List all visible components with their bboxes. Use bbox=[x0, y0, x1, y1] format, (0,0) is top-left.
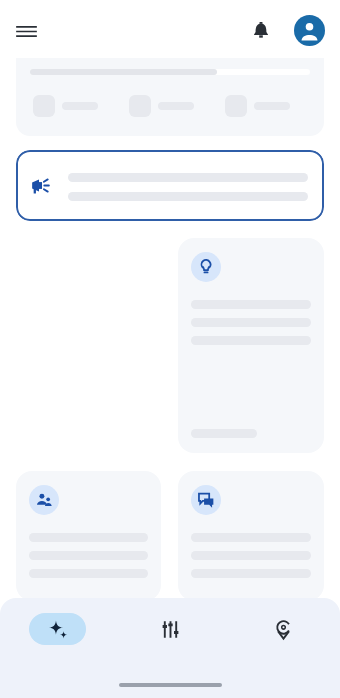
button[interactable]: Places bbox=[255, 613, 312, 645]
button[interactable]: Tune bbox=[142, 613, 199, 645]
button[interactable]: Account bbox=[294, 15, 325, 46]
button[interactable] bbox=[178, 471, 324, 601]
button[interactable] bbox=[178, 238, 324, 453]
button[interactable] bbox=[16, 471, 161, 601]
button[interactable]: Notifications bbox=[246, 16, 276, 46]
button[interactable] bbox=[16, 58, 324, 136]
button[interactable]: Open navigation menu bbox=[12, 17, 40, 45]
button[interactable] bbox=[16, 150, 324, 221]
button[interactable]: Discover bbox=[29, 613, 86, 645]
